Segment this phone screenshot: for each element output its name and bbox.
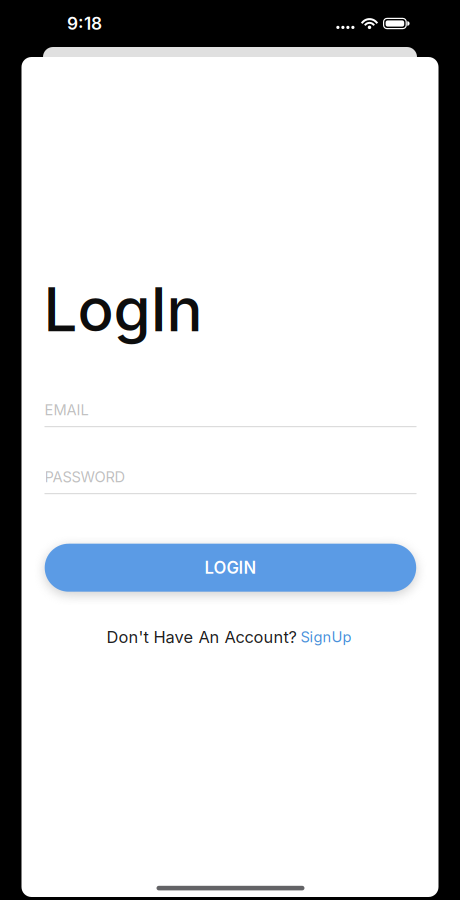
- button[interactable]: SignUp: [300, 628, 351, 646]
- staticText: PASSWORD: [44, 468, 125, 486]
- staticText: 9:18: [67, 13, 102, 34]
- staticText: LOGIN: [204, 558, 256, 578]
- button[interactable]: LOGIN: [45, 544, 416, 592]
- staticText: SignUp: [300, 628, 351, 646]
- staticText: Don't Have An Account?: [106, 627, 296, 647]
- staticText: LogIn: [43, 273, 202, 346]
- staticText: EMAIL: [44, 401, 88, 419]
